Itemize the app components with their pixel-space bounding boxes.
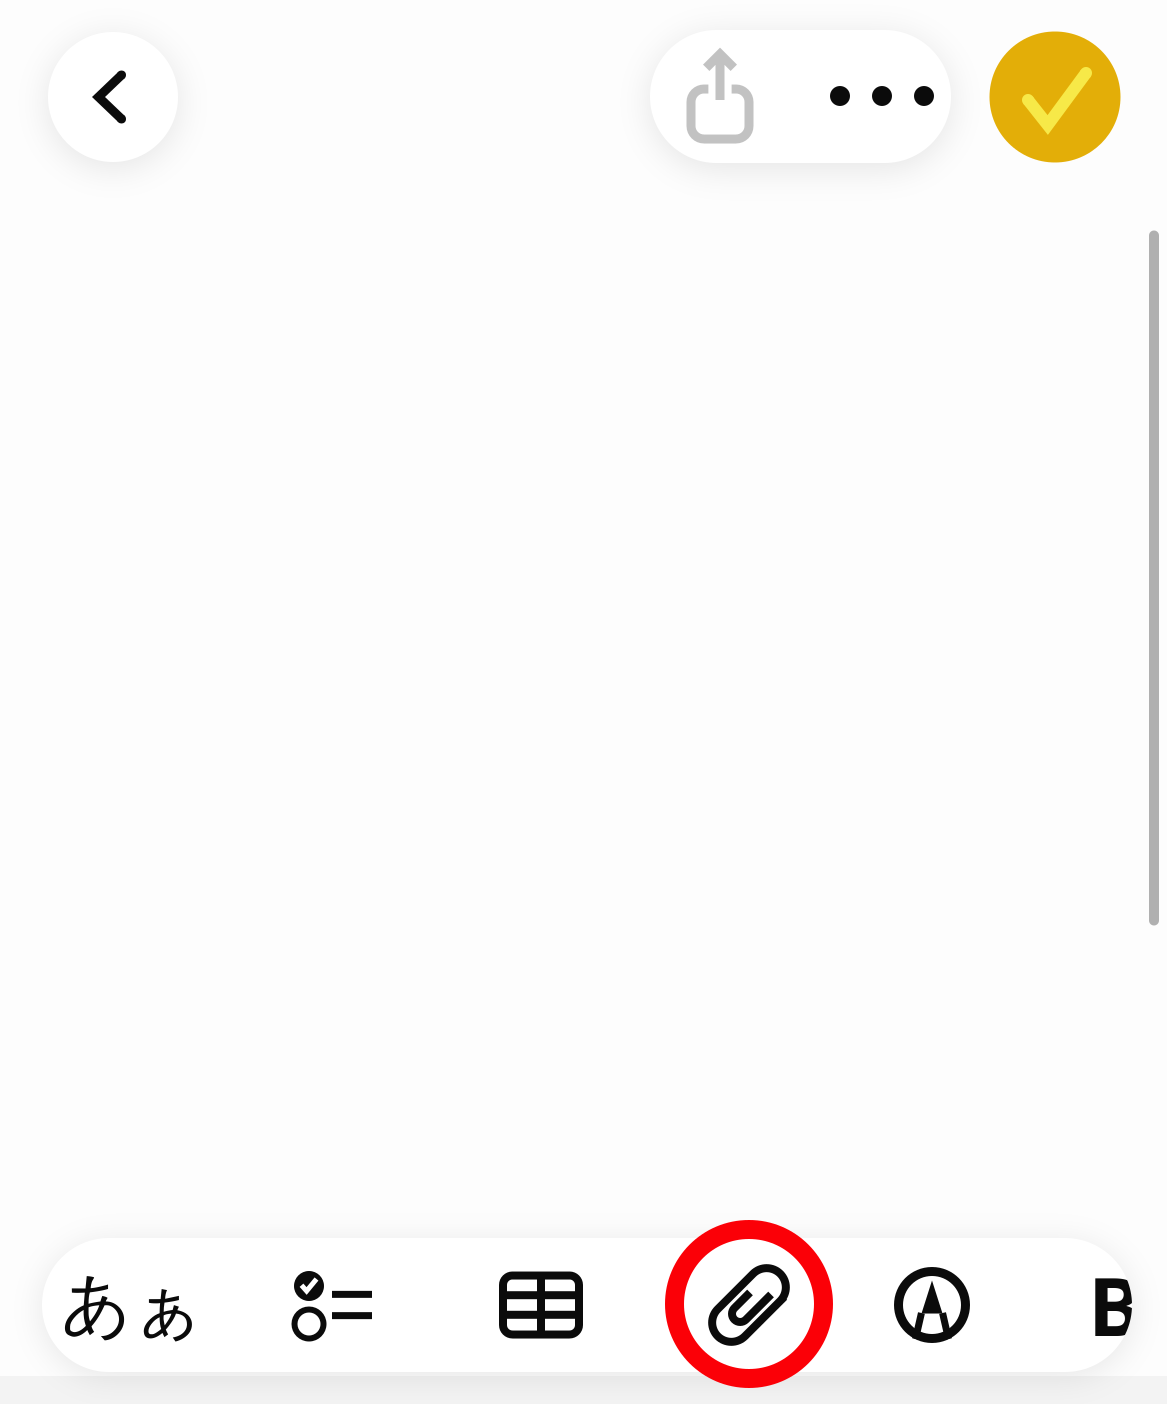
button[interactable]: Back xyxy=(48,32,178,162)
button[interactable]: Draw xyxy=(847,1238,1017,1372)
button[interactable]: Share xyxy=(665,29,775,162)
button[interactable]: Bold xyxy=(1075,1238,1155,1372)
button[interactable]: More options xyxy=(817,29,947,162)
button[interactable]: Done xyxy=(989,31,1120,162)
staticText: あぁ xyxy=(61,1262,203,1348)
button[interactable]: Table xyxy=(456,1238,626,1372)
button[interactable]: Text style xyxy=(52,1238,212,1372)
button[interactable]: Checklist xyxy=(247,1238,417,1372)
button[interactable]: Attach file xyxy=(664,1238,834,1372)
staticText: B xyxy=(1088,1252,1141,1358)
